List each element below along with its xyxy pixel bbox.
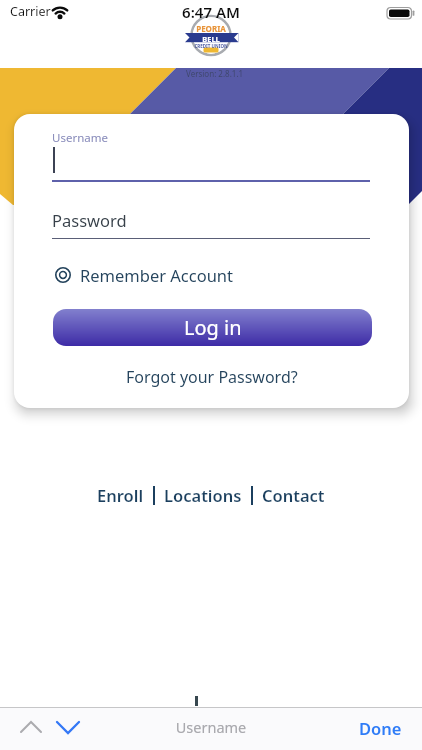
staticText: Version: 2.8.1.1 bbox=[186, 68, 244, 79]
staticText: 6:47 AM bbox=[0, 2, 422, 22]
staticText: Remember Account bbox=[80, 264, 234, 286]
staticText: Password bbox=[52, 209, 127, 231]
button[interactable] bbox=[10, 715, 85, 743]
button[interactable]: Contact bbox=[262, 484, 325, 506]
button[interactable]: Enroll bbox=[97, 484, 144, 506]
staticText: Carrier bbox=[10, 3, 51, 20]
button[interactable]: Done bbox=[359, 717, 402, 739]
staticText: CREDIT UNION bbox=[0, 43, 422, 49]
staticText: PEORIA bbox=[0, 23, 422, 34]
staticText: Username bbox=[52, 130, 108, 146]
button[interactable]: Forgot your Password? bbox=[126, 366, 298, 388]
staticText: Username bbox=[0, 717, 422, 737]
button[interactable]: Log in bbox=[53, 309, 372, 346]
button[interactable]: Remember Account bbox=[53, 264, 234, 286]
button[interactable]: Locations bbox=[164, 484, 242, 506]
staticText: BELL bbox=[0, 34, 422, 44]
staticText: Log in bbox=[184, 314, 242, 341]
